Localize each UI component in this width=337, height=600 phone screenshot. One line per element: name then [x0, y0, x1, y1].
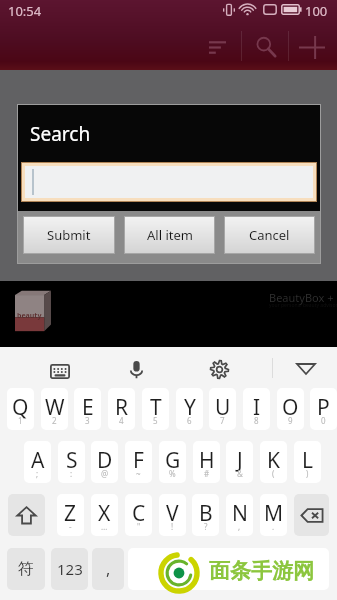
button[interactable] [25, 166, 313, 198]
staticText: H [199, 446, 215, 475]
staticText: ( [272, 468, 275, 479]
staticText: 3 [85, 415, 90, 426]
staticText: X [98, 499, 111, 528]
button[interactable]: Comma [92, 548, 124, 590]
button[interactable]: Sort [194, 24, 240, 70]
staticText: T [150, 393, 162, 422]
button[interactable]: B [192, 494, 219, 536]
staticText: U [215, 393, 231, 422]
staticText: Cancel [249, 226, 290, 244]
button[interactable]: K [260, 441, 287, 483]
staticText: " [137, 521, 141, 532]
button[interactable]: Z [57, 494, 84, 536]
staticText: B [199, 499, 213, 528]
staticText: : [70, 468, 73, 479]
staticText: O [282, 393, 299, 422]
button[interactable]: G [159, 441, 186, 483]
staticText: V [166, 499, 179, 528]
staticText: & [237, 468, 243, 479]
button[interactable]: F [125, 441, 152, 483]
button[interactable]: O [277, 388, 304, 430]
button[interactable]: All item [125, 217, 214, 253]
staticText: # [204, 468, 210, 479]
staticText: Search [30, 121, 91, 147]
button[interactable]: N [226, 494, 253, 536]
staticText: , [238, 521, 241, 532]
button[interactable]: T [142, 388, 169, 430]
button[interactable]: C [125, 494, 152, 536]
button[interactable]: S [58, 441, 85, 483]
button[interactable]: Hide keyboard [290, 353, 322, 385]
staticText: beauty [17, 311, 42, 321]
staticText: ! [171, 521, 174, 532]
staticText: ; [36, 468, 39, 479]
button[interactable]: I [243, 388, 270, 430]
staticText: Q [12, 393, 29, 422]
button[interactable]: Space [128, 548, 329, 590]
staticText: ) [306, 468, 309, 479]
button[interactable]: Search [243, 24, 289, 70]
staticText: D [97, 446, 113, 475]
button[interactable]: M [260, 494, 287, 536]
button[interactable]: R [108, 388, 135, 430]
button[interactable]: U [209, 388, 236, 430]
staticText: . [272, 521, 275, 532]
staticText: 4 [119, 415, 124, 426]
staticText: N [232, 499, 248, 528]
button[interactable]: D [91, 441, 118, 483]
button[interactable]: Numbers [51, 548, 88, 590]
staticText: R [115, 393, 129, 422]
staticText: L [302, 446, 314, 475]
button[interactable]: Shift [8, 494, 45, 536]
button[interactable]: Voice input [120, 353, 152, 385]
button[interactable]: Add [289, 24, 335, 70]
staticText: S [66, 446, 78, 475]
staticText: 2 [52, 415, 57, 426]
staticText: @ [101, 468, 109, 479]
button[interactable]: E [74, 388, 101, 430]
staticText: … [101, 521, 108, 532]
staticText: , [106, 558, 111, 580]
staticText: 7 [220, 415, 225, 426]
staticText: 10:54 [8, 2, 42, 20]
staticText: % [169, 468, 176, 479]
button[interactable]: L [294, 441, 321, 483]
button[interactable]: P [310, 388, 337, 430]
staticText: 6 [187, 415, 192, 426]
button[interactable]: A [24, 441, 51, 483]
staticText: 面条手游网 [209, 558, 314, 584]
staticText: All item [147, 226, 193, 244]
staticText: 0 [321, 415, 326, 426]
staticText: I [253, 393, 261, 422]
button[interactable]: Backspace [294, 494, 329, 536]
staticText: C [132, 499, 146, 528]
staticText: E [82, 393, 94, 422]
staticText: P [317, 393, 330, 422]
staticText: K [267, 446, 280, 475]
staticText: 9 [288, 415, 293, 426]
staticText: A [31, 446, 45, 475]
staticText: ? [204, 521, 208, 532]
button[interactable]: Symbols [7, 548, 45, 590]
button[interactable]: V [159, 494, 186, 536]
button[interactable]: X [91, 494, 118, 536]
button[interactable]: Keyboard layout [44, 355, 76, 387]
button[interactable]: Cancel [225, 217, 314, 253]
button[interactable]: Q [7, 388, 34, 430]
button[interactable]: J [226, 441, 253, 483]
button[interactable]: Y [176, 388, 203, 430]
button[interactable]: W [41, 388, 68, 430]
staticText: 8 [254, 415, 259, 426]
staticText: Z [64, 499, 77, 528]
staticText: F [133, 446, 144, 475]
staticText: 符 [18, 559, 34, 579]
staticText: 123 [57, 559, 83, 579]
staticText: BeautyBox + [269, 290, 334, 305]
button[interactable]: H [193, 441, 220, 483]
staticText: Y [184, 393, 196, 422]
button[interactable]: Settings [203, 353, 235, 385]
staticText: Submit [47, 226, 91, 244]
staticText: 5 [153, 415, 158, 426]
staticText: ~ [136, 468, 141, 479]
button[interactable]: Submit [24, 217, 114, 253]
